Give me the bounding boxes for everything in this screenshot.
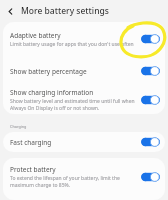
staticText: Charging [10, 124, 27, 129]
button[interactable]: Show battery percentage [3, 56, 165, 86]
staticText: Protect battery [10, 165, 56, 174]
button[interactable]: Fast charging [3, 132, 165, 152]
staticText: More battery settings [21, 5, 109, 17]
button[interactable]: Adaptive battery [3, 22, 165, 56]
staticText: Adaptive battery [10, 31, 61, 40]
staticText: Fast charging [10, 138, 52, 147]
button[interactable]: Toggle [141, 34, 160, 44]
button[interactable]: Protect battery [3, 158, 165, 196]
staticText: Show battery percentage [10, 67, 87, 76]
staticText: To extend the lifespan of your battery, … [10, 175, 139, 189]
button[interactable]: Toggle [141, 137, 160, 147]
button[interactable]: Toggle [141, 95, 160, 105]
button[interactable]: Show charging information [3, 86, 165, 114]
staticText: Show charging information [10, 88, 94, 97]
staticText: Show battery level and estimated time un… [10, 98, 139, 112]
button[interactable]: Toggle [141, 172, 160, 182]
staticText: Limit battery usage for apps that you do… [10, 41, 134, 48]
button[interactable]: Back [0, 1, 21, 22]
button[interactable]: Toggle [141, 66, 160, 76]
